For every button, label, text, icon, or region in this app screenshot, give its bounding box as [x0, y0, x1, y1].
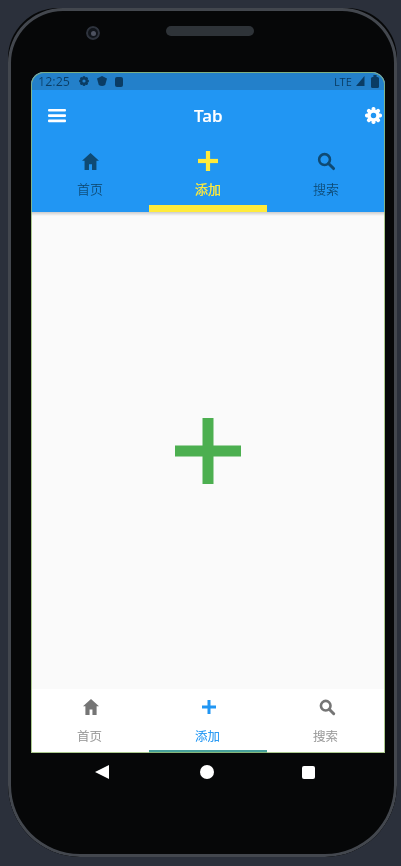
button[interactable]: 首页 [31, 689, 149, 753]
staticText: 12:25 [38, 73, 70, 90]
button[interactable] [193, 758, 221, 786]
button[interactable] [362, 104, 384, 126]
button[interactable] [45, 103, 69, 127]
staticText: 首页 [77, 179, 104, 198]
button[interactable]: 搜索 [267, 140, 385, 212]
button[interactable] [294, 758, 322, 786]
button[interactable]: 首页 [31, 140, 149, 212]
button[interactable]: 添加 [149, 689, 267, 753]
staticText: LTE [334, 74, 352, 89]
button[interactable] [88, 758, 116, 786]
button[interactable]: 搜索 [267, 689, 385, 753]
staticText: 搜索 [313, 179, 340, 198]
staticText: 添加 [195, 179, 222, 198]
staticText: 搜索 [313, 726, 339, 744]
button[interactable]: 添加 [149, 140, 267, 212]
staticText: Tab [194, 104, 223, 127]
staticText: 添加 [195, 726, 221, 744]
staticText: 首页 [77, 726, 103, 744]
